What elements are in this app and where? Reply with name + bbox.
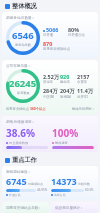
staticText: 80% — [68, 26, 80, 33]
staticText: 870 — [43, 40, 53, 47]
staticText: 已开通 — [43, 33, 54, 37]
staticText: 4S服务站总数量 › — [6, 15, 34, 20]
staticText: 新能源站建设 › — [6, 169, 30, 174]
staticText: 建站车 — [60, 80, 71, 84]
button[interactable]: 整体概况 — [2, 0, 98, 12]
staticText: 四季度关键站点总数 › — [6, 205, 41, 210]
button[interactable]: 新能源站建设 › — [2, 166, 98, 200]
staticText: 保有数量 — [17, 91, 30, 95]
staticText: 服务站总数 — [15, 43, 31, 47]
staticText: 920 — [60, 73, 70, 80]
staticText: 新增(A) — [60, 94, 71, 99]
staticText: 达标占比 — [54, 193, 66, 197]
staticText: 公司车辆总量 › — [6, 63, 30, 68]
staticText: 2157 — [77, 73, 90, 80]
staticText: 整体进度 — [55, 141, 68, 145]
staticText: 4S售后维修进度 › — [6, 119, 34, 124]
staticText: 合置车 — [77, 80, 88, 84]
staticText: 204万 — [60, 87, 75, 94]
staticText: 供应商总量统计 › — [55, 205, 83, 210]
staticText: 46.95% — [37, 188, 48, 192]
staticText: 总桩总数 — [78, 182, 90, 186]
staticText: 284万 — [43, 87, 58, 94]
staticText: 四季度关键站点 — [6, 107, 30, 111]
button[interactable]: 重点工作 — [2, 154, 98, 166]
staticText: 100% — [52, 126, 79, 140]
staticText: 开通占比 — [9, 193, 21, 197]
button[interactable]: 4S服务站总数量 › — [2, 12, 98, 58]
staticText: 四季度末增加站点 — [43, 47, 71, 51]
staticText: 38.6% — [6, 126, 35, 140]
staticText: 营运车 — [43, 80, 54, 84]
staticText: 26245 — [9, 77, 37, 90]
staticText: 总开(C) — [77, 94, 88, 99]
button[interactable]: 四季度关键站点总数 › — [2, 202, 49, 213]
staticText: 已建成站点 — [28, 182, 43, 186]
staticText: 360个以上 — [30, 106, 46, 111]
staticText: 5066 — [46, 26, 59, 33]
staticText: 已开通占比 — [68, 33, 85, 37]
staticText: 小区(B) — [43, 94, 55, 99]
button[interactable]: 公司车辆总量 › — [2, 60, 98, 114]
button[interactable]: 供应商总量统计 › — [51, 202, 98, 213]
staticText: 整体无忧测标 › — [72, 106, 94, 111]
staticText: 60.3% — [85, 188, 94, 192]
staticText: 11.4万 — [77, 87, 94, 94]
button[interactable]: 4S售后维修进度 › — [2, 116, 98, 152]
staticText: 重点工作 — [12, 156, 37, 164]
staticText: 2.52万 — [43, 73, 60, 80]
staticText: 整体概况 — [12, 2, 37, 10]
staticText: 6546 — [12, 29, 34, 42]
staticText: 6745 — [6, 175, 27, 187]
staticText: 14373 — [51, 175, 77, 187]
staticText: 已立项未转固 — [9, 141, 29, 145]
